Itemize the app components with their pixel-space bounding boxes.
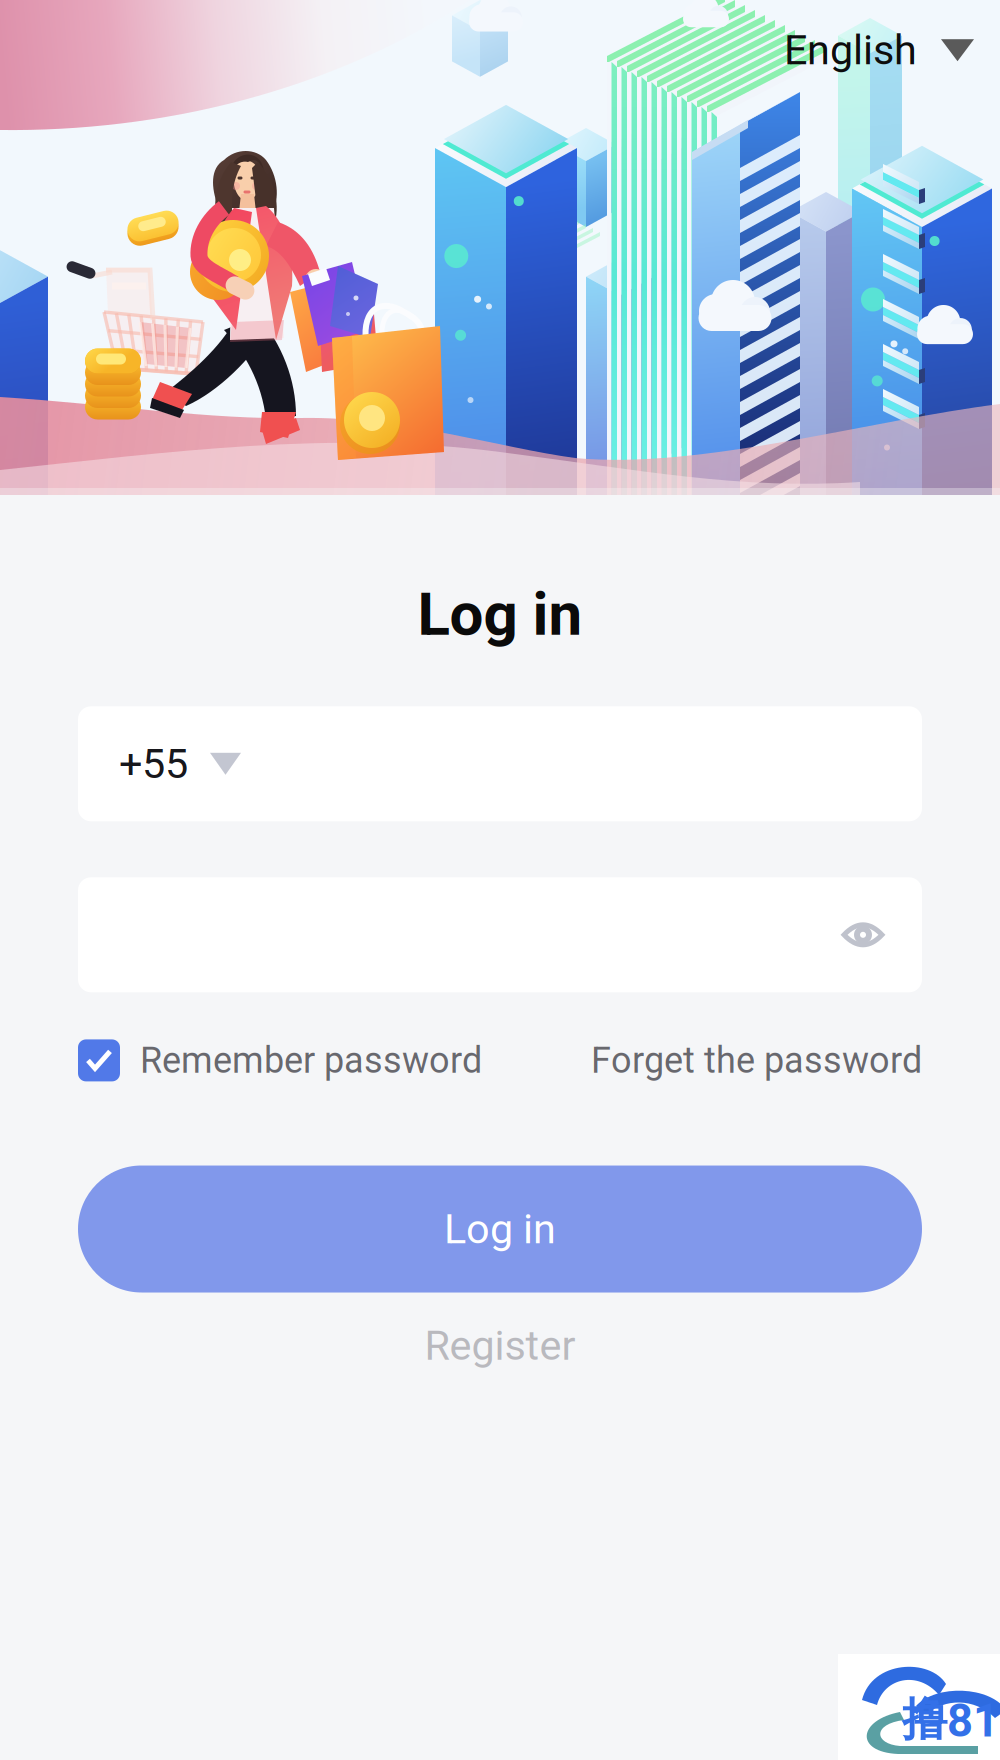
staticText: Remember password — [140, 1039, 482, 1081]
button[interactable]: Show password — [840, 912, 886, 958]
staticText: +55 — [119, 740, 188, 788]
staticText: English — [784, 26, 917, 74]
staticText: Register — [424, 1321, 575, 1370]
staticText: Forget the password — [591, 1039, 922, 1081]
staticText: Log in — [444, 1205, 556, 1253]
button[interactable]: Remember password — [78, 1039, 482, 1081]
staticText: 撸81 — [902, 1691, 999, 1748]
button[interactable]: English — [772, 16, 986, 84]
button[interactable]: Log in — [78, 1165, 922, 1292]
button[interactable]: Register — [384, 1311, 615, 1380]
button[interactable]: Forget the password — [591, 1039, 922, 1081]
staticText: Log in — [417, 579, 582, 649]
